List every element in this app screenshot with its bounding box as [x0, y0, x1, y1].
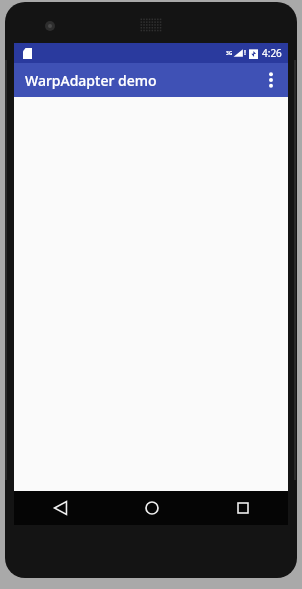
- staticText: WarpAdapter demo: [25, 71, 157, 90]
- staticText: 3G: [226, 50, 233, 57]
- button[interactable]: More options: [254, 63, 288, 97]
- staticText: 4:26: [262, 46, 282, 60]
- button[interactable]: Recent apps: [197, 491, 288, 525]
- button[interactable]: Home: [106, 491, 197, 525]
- staticText: !: [244, 48, 246, 58]
- button[interactable]: Back: [14, 491, 106, 525]
